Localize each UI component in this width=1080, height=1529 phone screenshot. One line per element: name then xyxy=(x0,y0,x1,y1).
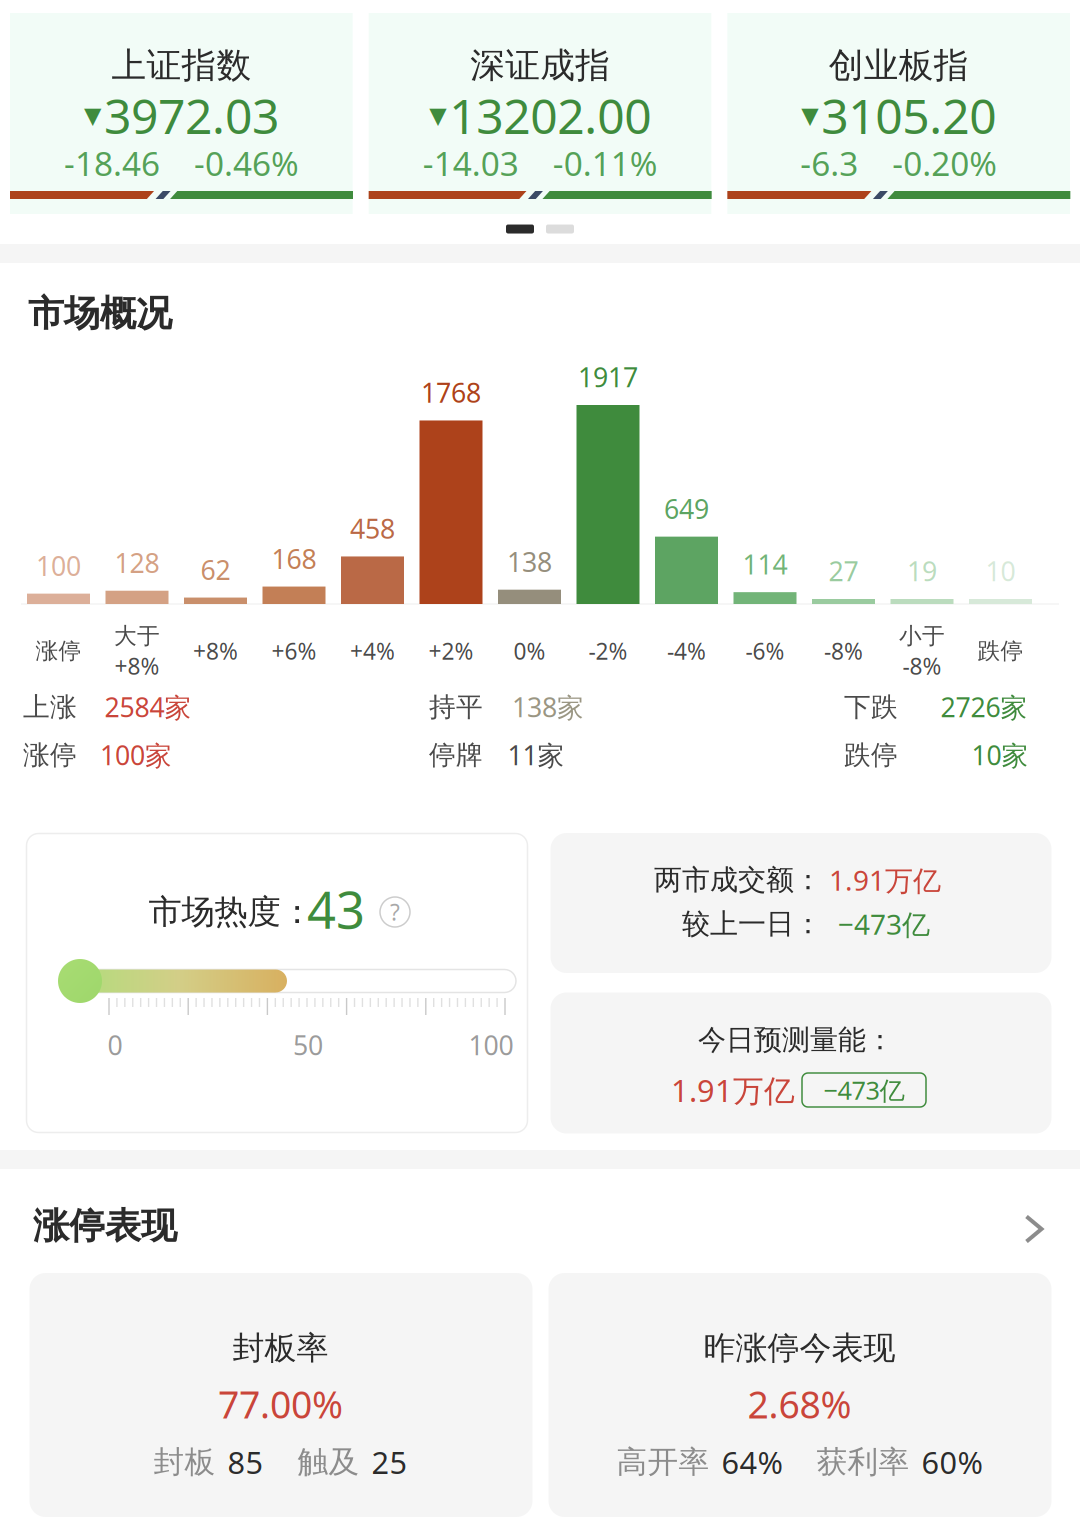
staticText: 100 xyxy=(36,547,81,584)
staticText: -0.11% xyxy=(553,140,658,186)
staticText: 62 xyxy=(200,551,230,588)
staticText: 上涨 xyxy=(23,690,77,724)
staticText: 涨停 xyxy=(23,738,77,772)
staticText: 1.91万亿 xyxy=(671,1069,795,1111)
staticText: -4% xyxy=(667,636,706,666)
staticText: 168 xyxy=(271,540,316,577)
staticText: +8% xyxy=(193,636,238,666)
staticText: ▼ xyxy=(429,102,446,129)
staticText: -18.46 xyxy=(64,140,160,186)
staticText: 64% xyxy=(721,1441,782,1483)
staticText: 获利率 xyxy=(816,1443,909,1481)
staticText: 涨停表现 xyxy=(33,1203,177,1249)
staticText: 138家 xyxy=(512,689,584,725)
staticText: 100 xyxy=(468,1027,513,1063)
staticText: 触及 xyxy=(297,1443,359,1481)
staticText: 3105.20 xyxy=(821,83,996,148)
staticText: 0% xyxy=(513,636,545,666)
staticText: 2584家 xyxy=(104,689,191,725)
staticText: +8% xyxy=(114,651,159,681)
staticText: 跌停 xyxy=(977,637,1023,665)
staticText: 50 xyxy=(293,1027,323,1063)
staticText: ▼ xyxy=(801,102,818,129)
staticText: 11家 xyxy=(507,737,564,773)
staticText: 85 xyxy=(227,1441,263,1483)
staticText: 13202.00 xyxy=(449,83,651,148)
staticText: 649 xyxy=(664,490,709,527)
staticText: 10 xyxy=(985,553,1015,589)
staticText: -14.03 xyxy=(423,140,519,186)
staticText: 1917 xyxy=(578,359,638,395)
staticText: 2.68% xyxy=(747,1379,851,1429)
staticText: +4% xyxy=(350,636,395,666)
staticText: 10家 xyxy=(971,737,1028,773)
staticText: 跌停 xyxy=(844,738,898,772)
staticText: 封板率 xyxy=(232,1328,328,1368)
staticText: -2% xyxy=(588,636,627,666)
staticText: 77.00% xyxy=(218,1379,343,1429)
staticText: 138 xyxy=(507,543,552,580)
staticText: 27 xyxy=(828,553,858,589)
staticText: 今日预测量能： xyxy=(698,1022,894,1058)
staticText: 下跌 xyxy=(844,690,898,724)
staticText: ▼ xyxy=(84,102,101,129)
staticText: 持平 xyxy=(429,690,483,724)
staticText: -8% xyxy=(824,636,863,666)
staticText: 43 xyxy=(307,874,365,943)
staticText: -6.3 xyxy=(800,140,858,186)
staticText: 19 xyxy=(907,553,937,589)
staticText: 市场概况 xyxy=(28,291,172,336)
staticText: 25 xyxy=(371,1441,407,1483)
button[interactable]: 上证指数 xyxy=(10,13,353,214)
staticText: 60% xyxy=(921,1441,982,1483)
staticText: 1768 xyxy=(421,374,481,411)
staticText: −473亿 xyxy=(823,1073,904,1107)
staticText: 涨停 xyxy=(35,637,81,665)
staticText: 创业板指 xyxy=(829,44,969,87)
staticText: 128 xyxy=(114,545,159,581)
staticText: 停牌 xyxy=(429,738,483,772)
staticText: 深证成指 xyxy=(470,44,610,87)
staticText: -8% xyxy=(902,651,941,681)
staticText: 两市成交额： xyxy=(654,862,822,898)
staticText: 市场热度： xyxy=(148,891,313,933)
staticText: 0 xyxy=(107,1027,122,1063)
staticText: 1.91万亿 xyxy=(829,861,941,899)
staticText: +2% xyxy=(428,636,473,666)
staticText: 昨涨停今表现 xyxy=(703,1328,895,1368)
staticText: -6% xyxy=(745,636,784,666)
staticText: 小于 xyxy=(899,622,945,650)
button[interactable]: 创业板指 xyxy=(727,13,1070,214)
button[interactable]: 昨涨停今表现 xyxy=(548,1273,1051,1517)
button[interactable]: 封板率 xyxy=(29,1273,532,1517)
staticText: 2726家 xyxy=(940,689,1027,725)
staticText: ? xyxy=(390,897,400,927)
staticText: 3972.03 xyxy=(104,83,279,148)
button[interactable]: 深证成指 xyxy=(369,13,711,214)
staticText: 上证指数 xyxy=(111,44,251,87)
staticText: -0.46% xyxy=(194,140,299,186)
staticText: 458 xyxy=(350,510,395,547)
staticText: −473亿 xyxy=(838,905,930,943)
staticText: 114 xyxy=(742,546,787,582)
button[interactable]: 涨停表现 xyxy=(0,1169,1080,1264)
staticText: 较上一日： xyxy=(682,906,822,942)
staticText: +6% xyxy=(271,636,316,666)
staticText: -0.20% xyxy=(892,140,997,186)
staticText: 100家 xyxy=(100,737,172,773)
staticText: 高开率 xyxy=(616,1443,709,1481)
staticText: 大于 xyxy=(114,622,160,650)
staticText: 封板 xyxy=(153,1443,215,1481)
